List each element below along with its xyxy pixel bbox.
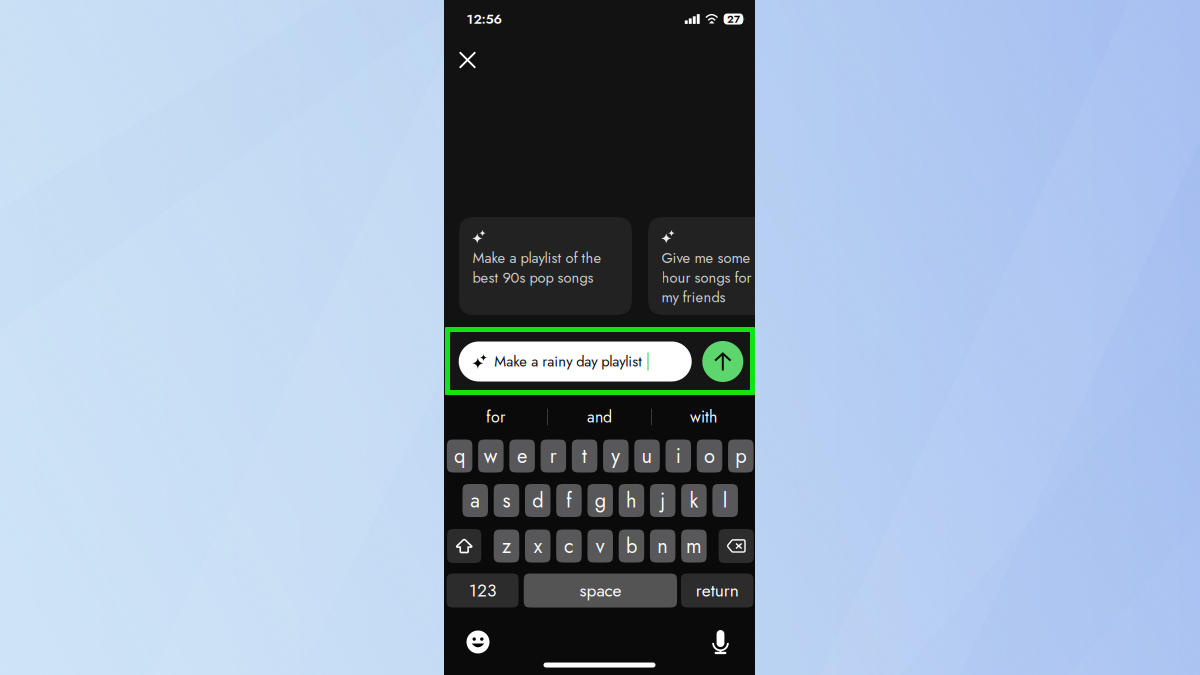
staticText: return bbox=[696, 578, 739, 603]
button[interactable]: j bbox=[650, 484, 675, 517]
button[interactable]: u bbox=[634, 439, 660, 472]
button[interactable]: s bbox=[494, 484, 519, 517]
staticText: x bbox=[534, 531, 542, 560]
staticText: f bbox=[566, 486, 572, 515]
staticText: w bbox=[484, 441, 498, 470]
staticText: u bbox=[642, 441, 653, 470]
button[interactable]: for bbox=[445, 400, 545, 434]
button[interactable]: Send bbox=[702, 341, 743, 382]
button[interactable]: l bbox=[712, 484, 738, 517]
button[interactable]: Shift bbox=[447, 529, 481, 563]
staticText: s bbox=[502, 486, 510, 515]
button[interactable]: v bbox=[587, 529, 613, 562]
button[interactable]: c bbox=[556, 529, 582, 562]
button[interactable]: r bbox=[541, 439, 566, 472]
button[interactable]: and bbox=[549, 400, 649, 434]
button[interactable]: z bbox=[494, 529, 519, 562]
staticText: with bbox=[690, 405, 717, 428]
button[interactable]: m bbox=[681, 529, 707, 562]
staticText: e bbox=[517, 441, 527, 470]
staticText: for bbox=[486, 405, 505, 428]
staticText: n bbox=[657, 531, 668, 560]
button[interactable]: y bbox=[603, 439, 629, 472]
button[interactable]: o bbox=[697, 439, 722, 472]
staticText: v bbox=[596, 531, 605, 560]
staticText: i bbox=[676, 441, 681, 470]
staticText: y bbox=[611, 441, 620, 470]
button[interactable]: e bbox=[509, 439, 535, 472]
staticText: c bbox=[564, 531, 574, 560]
button[interactable]: b bbox=[619, 529, 644, 562]
staticText: and bbox=[587, 405, 612, 428]
button[interactable]: w bbox=[478, 439, 504, 472]
button[interactable]: t bbox=[572, 439, 597, 472]
button[interactable]: Dictation bbox=[703, 625, 737, 659]
staticText: p bbox=[735, 441, 746, 470]
button[interactable]: d bbox=[525, 484, 550, 517]
button[interactable]: x bbox=[525, 529, 550, 562]
button[interactable]: n bbox=[650, 529, 675, 562]
staticText: z bbox=[502, 531, 511, 560]
button[interactable]: return bbox=[681, 573, 753, 607]
staticText: m bbox=[686, 531, 702, 560]
button[interactable]: Make a rainy day playlist bbox=[459, 341, 692, 381]
staticText: 12:56 bbox=[466, 9, 502, 29]
staticText: space bbox=[579, 578, 621, 603]
staticText: Make a playlist of the best 90s pop song… bbox=[472, 248, 601, 287]
staticText: Make a rainy day playlist bbox=[494, 351, 642, 372]
button[interactable]: a bbox=[462, 484, 488, 517]
staticText: r bbox=[550, 441, 557, 470]
staticText: a bbox=[470, 486, 480, 515]
button[interactable]: g bbox=[587, 484, 613, 517]
staticText: h bbox=[626, 486, 637, 515]
staticText: q bbox=[454, 441, 465, 470]
staticText: b bbox=[626, 531, 637, 560]
button[interactable]: Close bbox=[450, 43, 484, 77]
button[interactable]: with bbox=[653, 400, 753, 434]
button[interactable]: Make a playlist of the best 90s pop song… bbox=[459, 217, 632, 315]
staticText: d bbox=[532, 486, 543, 515]
button[interactable]: Give me some happy hour songs for me and… bbox=[648, 217, 821, 315]
button[interactable]: space bbox=[524, 573, 677, 607]
button[interactable]: h bbox=[619, 484, 644, 517]
staticText: g bbox=[595, 486, 606, 515]
button[interactable]: Delete bbox=[718, 529, 754, 563]
button[interactable]: f bbox=[556, 484, 582, 517]
button[interactable]: q bbox=[447, 439, 472, 472]
staticText: k bbox=[689, 486, 698, 515]
button[interactable]: p bbox=[728, 439, 753, 472]
staticText: o bbox=[704, 441, 715, 470]
staticText: l bbox=[723, 486, 728, 515]
button[interactable]: i bbox=[666, 439, 691, 472]
staticText: t bbox=[582, 441, 587, 470]
button[interactable]: Emoji keyboard bbox=[461, 625, 495, 659]
staticText: 123 bbox=[469, 578, 496, 603]
staticText: Give me some happy hour songs for me and… bbox=[661, 248, 801, 307]
button[interactable]: 123 bbox=[447, 573, 519, 607]
staticText: 27 bbox=[727, 11, 740, 27]
staticText: j bbox=[660, 486, 665, 515]
button[interactable]: k bbox=[681, 484, 707, 517]
